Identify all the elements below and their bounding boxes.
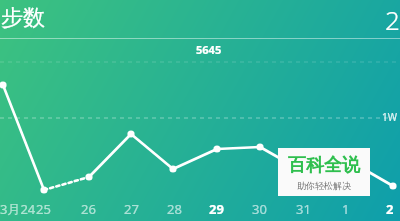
button[interactable]: 31	[296, 200, 311, 218]
button[interactable]: 26	[81, 200, 96, 218]
button[interactable]: 28	[167, 200, 182, 218]
staticText: 助你轻松解决	[297, 180, 351, 191]
button[interactable]: 1	[342, 200, 350, 218]
button[interactable]: 29	[209, 200, 224, 218]
button[interactable]: 2	[385, 2, 400, 37]
staticText: 27	[124, 200, 139, 218]
button[interactable]: 3月24	[0, 200, 36, 218]
staticText: 31	[296, 200, 311, 218]
staticText: 30	[252, 200, 267, 218]
staticText: 3月24	[0, 200, 36, 218]
button[interactable]: 27	[124, 200, 139, 218]
staticText: 5645	[196, 42, 222, 57]
staticText: 1	[342, 200, 350, 218]
button[interactable]: 25	[36, 200, 51, 218]
staticText: 1W	[382, 110, 398, 124]
button[interactable]: 2	[386, 200, 394, 218]
button[interactable]: 步数	[1, 4, 45, 32]
staticText: 25	[36, 200, 51, 218]
button[interactable]: 30	[252, 200, 267, 218]
staticText: 2	[386, 200, 394, 218]
staticText: 28	[167, 200, 182, 218]
staticText: 26	[81, 200, 96, 218]
staticText: 2	[385, 2, 400, 37]
other: 百科全说 watermark	[278, 148, 370, 196]
staticText: 步数	[1, 4, 45, 32]
staticText: 29	[209, 200, 224, 218]
staticText: 百科全说	[288, 154, 360, 177]
